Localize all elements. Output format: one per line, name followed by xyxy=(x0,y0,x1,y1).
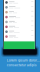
button[interactable] xyxy=(4,5,35,10)
button[interactable] xyxy=(4,10,35,15)
button[interactable] xyxy=(4,24,35,29)
button[interactable] xyxy=(4,34,35,39)
button[interactable] xyxy=(4,19,35,24)
button[interactable] xyxy=(4,29,35,34)
staticText: Lorem ipsum dolor sit ame xyxy=(7,58,40,62)
staticText: consectetur adipis xyxy=(7,63,37,67)
button[interactable] xyxy=(4,15,35,19)
button[interactable] xyxy=(4,0,35,5)
